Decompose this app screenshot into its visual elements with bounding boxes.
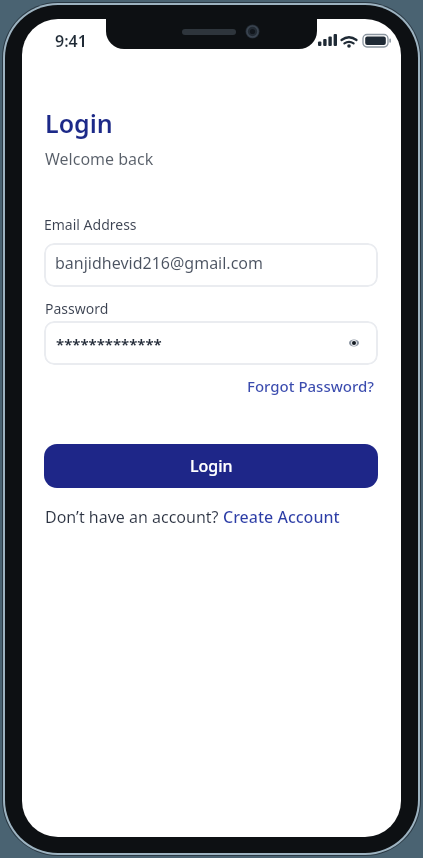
staticText: Password — [45, 299, 109, 318]
staticText: Email Address — [44, 215, 137, 234]
button[interactable]: Forgot Password? — [247, 376, 375, 396]
staticText: banjidhevid216@gmail.com — [55, 252, 263, 274]
button[interactable]: Login — [44, 444, 378, 488]
staticText: ************* — [56, 334, 162, 354]
staticText: 9:41 — [55, 30, 87, 52]
button[interactable]: ************* — [44, 321, 378, 365]
staticText: Don’t have an account? — [45, 506, 223, 528]
staticText: Login — [45, 106, 113, 140]
button[interactable]: banjidhevid216@gmail.com — [44, 243, 378, 287]
button[interactable]: Create Account — [223, 506, 340, 528]
staticText: Login — [190, 455, 233, 477]
staticText: Welcome back — [45, 148, 154, 170]
